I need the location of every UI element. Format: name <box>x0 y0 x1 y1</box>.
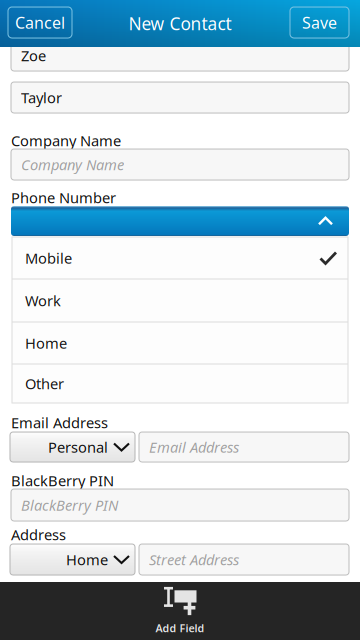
staticText: Personal <box>48 437 108 457</box>
staticText: BlackBerry PIN <box>11 471 114 490</box>
staticText: Save <box>302 12 337 33</box>
button[interactable]: Work <box>12 279 348 321</box>
staticText: Add Field <box>155 621 204 635</box>
button[interactable]: Add Field <box>0 582 360 640</box>
staticText: Home <box>66 550 108 569</box>
staticText: Phone Number <box>11 188 116 207</box>
button[interactable]: Other <box>12 364 348 402</box>
staticText: BlackBerry PIN <box>21 495 118 515</box>
staticText: Other <box>25 374 64 393</box>
button[interactable]: Personal <box>10 432 135 462</box>
button[interactable]: Home <box>12 322 348 363</box>
staticText: New Contact <box>128 12 231 35</box>
button[interactable]: Home <box>10 544 135 575</box>
staticText: Company Name <box>21 155 124 174</box>
staticText: Company Name <box>11 131 121 150</box>
staticText: Email Address <box>149 437 239 457</box>
staticText: Address <box>11 525 66 544</box>
button[interactable]: Save <box>290 7 349 38</box>
staticText: Home <box>25 333 67 353</box>
staticText: Email Address <box>11 413 108 432</box>
staticText: Work <box>25 291 61 310</box>
staticText: Cancel <box>15 12 65 33</box>
staticText: Mobile <box>25 248 72 268</box>
button[interactable] <box>11 206 349 236</box>
staticText: Street Address <box>149 550 239 569</box>
staticText: Zoe <box>21 46 46 65</box>
button[interactable]: Mobile <box>12 237 348 278</box>
staticText: Taylor <box>21 88 62 107</box>
button[interactable]: Cancel <box>8 7 72 38</box>
